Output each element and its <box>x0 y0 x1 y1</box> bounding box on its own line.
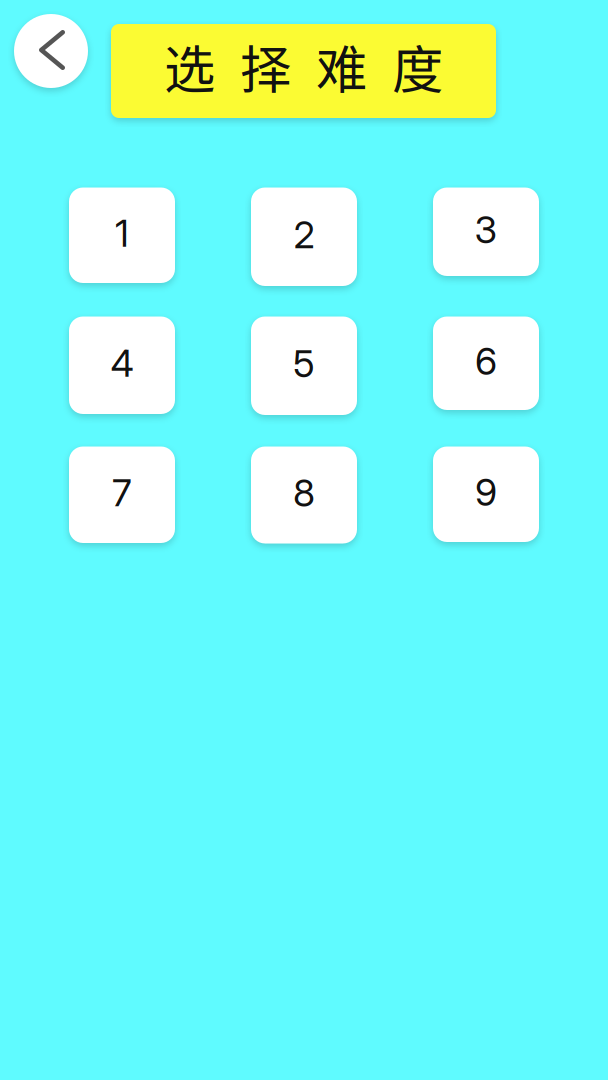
staticText: 9 <box>475 470 497 515</box>
staticText: 难 <box>316 29 367 103</box>
button[interactable]: 4 <box>69 316 175 414</box>
button[interactable]: 6 <box>433 316 539 410</box>
staticText: 8 <box>293 470 315 516</box>
staticText: 择 <box>240 29 291 103</box>
button[interactable]: 7 <box>69 446 175 543</box>
button[interactable]: 1 <box>69 187 175 283</box>
button[interactable]: 5 <box>251 316 357 415</box>
staticText: 2 <box>293 212 314 257</box>
staticText: 5 <box>293 341 315 386</box>
staticText: 6 <box>475 339 497 384</box>
staticText: 度 <box>392 29 443 103</box>
button[interactable]: Back <box>14 14 88 88</box>
button[interactable]: 8 <box>251 446 357 543</box>
staticText: 4 <box>110 341 133 386</box>
staticText: 1 <box>115 211 129 256</box>
staticText: 选 <box>164 29 215 103</box>
staticText: 7 <box>112 470 132 515</box>
button[interactable]: 3 <box>433 187 539 276</box>
staticText: 3 <box>474 207 497 252</box>
button[interactable]: 9 <box>433 446 539 542</box>
button[interactable]: 2 <box>251 187 357 286</box>
